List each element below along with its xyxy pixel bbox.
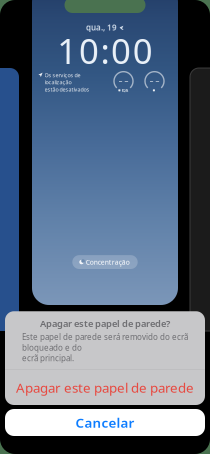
button[interactable]: Apagar este papel de parede [5, 370, 205, 405]
staticText: Cancelar [75, 414, 134, 431]
staticText: Os serviços de localização estão desativ… [44, 72, 89, 93]
staticText: Concentração [86, 258, 130, 266]
staticText: Este papel de parede será removido do ec… [22, 332, 188, 363]
staticText: 10:00 [57, 28, 153, 74]
staticText: ‒ ‒ [118, 77, 128, 86]
staticText: Apagar este papel de parede [16, 379, 194, 396]
staticText: qua., 19 [86, 22, 117, 33]
staticText: Apagar este papel de parede? [40, 317, 170, 330]
staticText: IQA [122, 88, 129, 93]
button[interactable]: Cancelar [5, 409, 205, 436]
staticText: ‒ ‒ [149, 77, 159, 86]
